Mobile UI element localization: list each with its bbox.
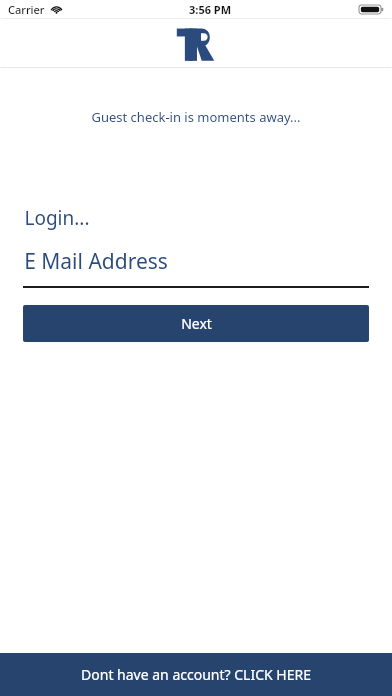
- button[interactable]: TR logo: [1, 18, 391, 68]
- staticText: Dont have an account? CLICK HERE: [81, 665, 311, 684]
- staticText: E Mail Address: [24, 247, 168, 276]
- staticText: Guest check-in is moments away...: [91, 108, 301, 126]
- button[interactable]: Next: [23, 305, 369, 342]
- button[interactable]: Dont have an account? CLICK HERE: [0, 653, 392, 696]
- staticText: Next: [181, 314, 212, 333]
- staticText: Carrier: [8, 2, 45, 17]
- staticText: Login...: [24, 205, 90, 231]
- staticText: 3:56 PM: [189, 2, 232, 17]
